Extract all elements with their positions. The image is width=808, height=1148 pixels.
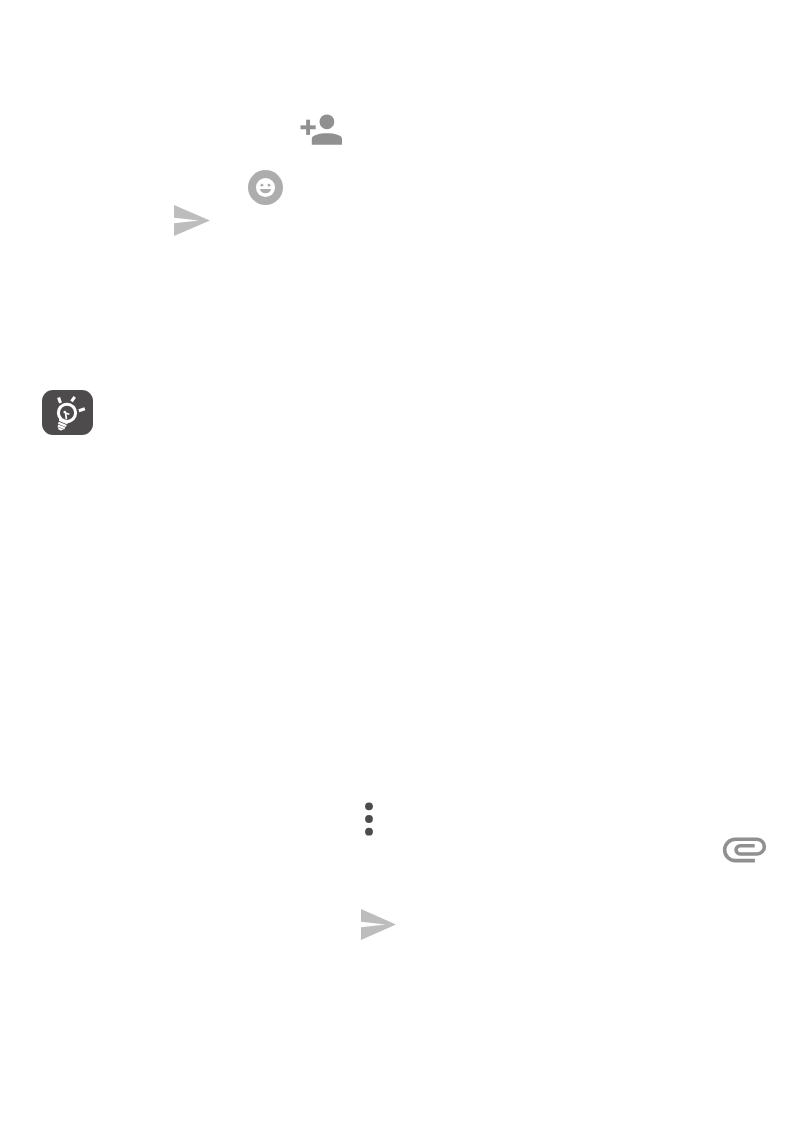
button[interactable]: Add people [298,110,344,150]
button[interactable]: Attach [718,830,770,870]
button[interactable]: Emoji [248,170,283,205]
button[interactable]: Send message [361,909,396,940]
button[interactable]: Send [174,205,210,236]
button[interactable]: More options [353,790,385,848]
button[interactable]: Tips and updates [42,390,93,435]
